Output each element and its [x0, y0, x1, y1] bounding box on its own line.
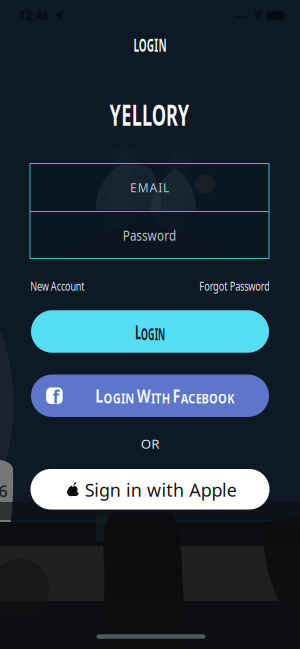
button[interactable]: f [31, 374, 269, 417]
staticText: W [131, 384, 148, 407]
staticText: OGIN [133, 323, 177, 345]
staticText: OGIN [91, 390, 128, 407]
staticText: Sign in with Apple [81, 477, 240, 502]
staticText [128, 390, 131, 407]
button[interactable]: Password [30, 212, 269, 258]
button[interactable]: Forgot Password [183, 277, 285, 294]
staticText: f [52, 385, 59, 408]
staticText: ITH [148, 390, 171, 407]
staticText: Forgot Password [183, 277, 285, 294]
button[interactable]: EMAIL [30, 164, 269, 211]
staticText: Password [116, 225, 183, 245]
staticText: F [174, 384, 184, 407]
staticText: ACEBOOK [184, 390, 249, 407]
staticText: New Account [17, 277, 97, 294]
staticText: 6 [0, 480, 7, 502]
staticText: OR [141, 435, 159, 452]
staticText: EMAIL [130, 179, 169, 195]
staticText [171, 390, 174, 407]
button[interactable]: New Account [17, 277, 97, 294]
staticText: LOGIN [121, 33, 178, 56]
button[interactable]: L [31, 310, 269, 353]
button[interactable]: Sign in with Apple [30, 469, 269, 509]
staticText: YELLORY [88, 96, 211, 134]
staticText: 12:46 [16, 6, 52, 24]
